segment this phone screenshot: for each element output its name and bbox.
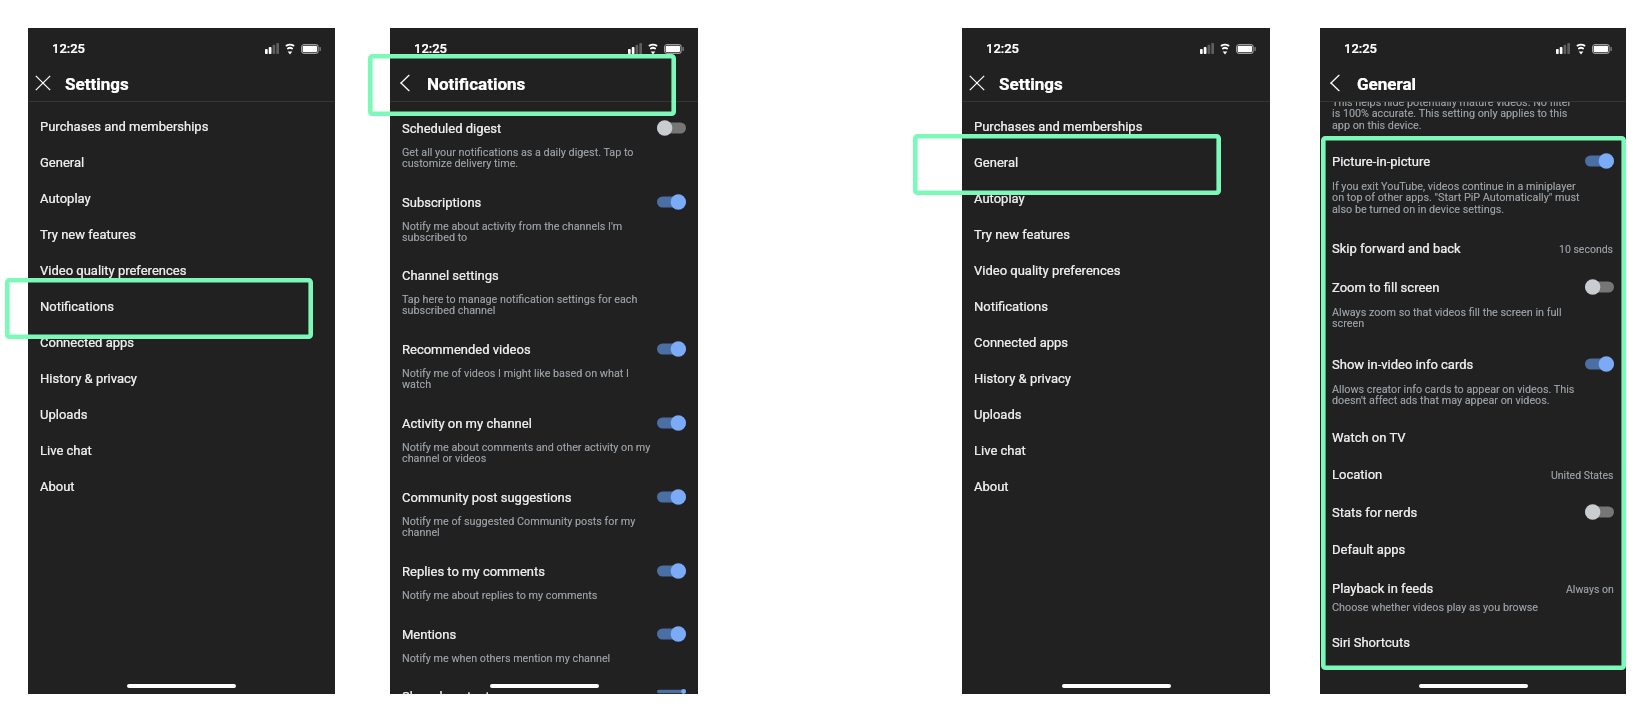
staticText: About	[974, 479, 1009, 494]
button[interactable]: Replies to my comments	[390, 551, 698, 614]
staticText: 10 seconds	[1559, 243, 1614, 255]
staticText: Autoplay	[974, 191, 1025, 206]
staticText: Default apps	[1332, 542, 1614, 557]
button[interactable]: Show in-video info cards	[1320, 344, 1626, 419]
button[interactable]: Notifications	[962, 288, 1270, 324]
button[interactable]: Uploads	[962, 396, 1270, 432]
staticText: 12:25	[52, 41, 85, 56]
staticText: Notify me when others mention my channel	[402, 652, 611, 665]
button[interactable]: Close	[28, 68, 58, 98]
staticText: Scheduled digest	[402, 121, 657, 136]
staticText: Notifications	[427, 74, 526, 94]
staticText: Replies to my comments	[402, 564, 657, 579]
staticText: General	[40, 155, 85, 170]
staticText: General	[1357, 74, 1417, 94]
button[interactable]: Scheduled digest	[390, 108, 698, 182]
button[interactable]: Switch on	[657, 194, 686, 210]
button[interactable]: Notifications	[28, 288, 335, 324]
button[interactable]: Siri Shortcuts	[1320, 624, 1626, 661]
staticText: Video quality preferences	[40, 263, 187, 278]
button[interactable]: Video quality preferences	[962, 252, 1270, 288]
button[interactable]: Switch on	[657, 489, 686, 505]
button[interactable]: General	[28, 144, 335, 180]
staticText: Try new features	[40, 227, 136, 242]
button[interactable]: Location	[1320, 456, 1626, 493]
button[interactable]: Community post suggestions	[390, 477, 698, 551]
staticText: Notify me about comments and other activ…	[402, 441, 651, 465]
button[interactable]: Switch on	[1585, 356, 1614, 372]
staticText: Live chat	[974, 443, 1026, 458]
button[interactable]: Switch on	[657, 341, 686, 357]
button[interactable]: Switch off	[1585, 279, 1614, 295]
staticText: Purchases and memberships	[40, 119, 209, 134]
button[interactable]: Mentions	[390, 614, 698, 677]
button[interactable]: Playback in feeds	[1320, 568, 1626, 624]
staticText: Siri Shortcuts	[1332, 635, 1614, 650]
staticText: Uploads	[40, 407, 88, 422]
staticText: Video quality preferences	[974, 263, 1121, 278]
staticText: If you exit YouTube, videos continue in …	[1332, 180, 1581, 216]
staticText: Connected apps	[40, 335, 135, 350]
button[interactable]: Zoom to fill screen	[1320, 267, 1626, 344]
button[interactable]: Shared content	[390, 677, 698, 694]
staticText: This helps hide potentially mature video…	[1332, 102, 1581, 131]
staticText: Watch on TV	[1332, 430, 1614, 445]
staticText: Mentions	[402, 627, 657, 642]
staticText: Connected apps	[974, 335, 1069, 350]
button[interactable]: Switch on	[657, 563, 686, 579]
button[interactable]: Switch on	[657, 415, 686, 431]
button[interactable]: Activity on my channel	[390, 403, 698, 477]
button[interactable]: Subscriptions	[390, 182, 698, 256]
button[interactable]: Try new features	[962, 216, 1270, 252]
staticText: General	[974, 155, 1019, 170]
button[interactable]: Autoplay	[962, 180, 1270, 216]
button[interactable]: Autoplay	[28, 180, 335, 216]
button[interactable]: Skip forward and back	[1320, 230, 1626, 267]
staticText: Live chat	[40, 443, 92, 458]
staticText: Uploads	[974, 407, 1022, 422]
staticText: Tap here to manage notification settings…	[402, 293, 651, 317]
staticText: Notifications	[974, 299, 1048, 314]
button[interactable]: General	[962, 144, 1270, 180]
button[interactable]: Watch on TV	[1320, 419, 1626, 456]
button[interactable]: Back	[1320, 68, 1350, 98]
button[interactable]: Switch on	[657, 626, 686, 642]
button[interactable]: Live chat	[28, 432, 335, 468]
staticText: Zoom to fill screen	[1332, 280, 1585, 295]
button[interactable]: Switch on	[657, 689, 686, 694]
button[interactable]: Switch off	[1585, 504, 1614, 520]
button[interactable]: Switch off	[657, 120, 686, 136]
staticText: Notify me of videos I might like based o…	[402, 367, 651, 391]
button[interactable]: Purchases and memberships	[28, 108, 335, 144]
staticText: History & privacy	[974, 371, 1071, 386]
button[interactable]: Close	[962, 68, 992, 98]
staticText: Allows creator info cards to appear on v…	[1332, 383, 1581, 407]
staticText: 12:25	[986, 41, 1019, 56]
button[interactable]: Switch on	[1585, 153, 1614, 169]
button[interactable]: Purchases and memberships	[962, 108, 1270, 144]
button[interactable]: Back	[390, 68, 420, 98]
staticText: Autoplay	[40, 191, 91, 206]
button[interactable]: Connected apps	[962, 324, 1270, 360]
staticText: Notify me about replies to my comments	[402, 589, 598, 602]
button[interactable]: About	[28, 468, 335, 504]
button[interactable]: Live chat	[962, 432, 1270, 468]
button[interactable]: Stats for nerds	[1320, 493, 1626, 531]
button[interactable]: Video quality preferences	[28, 252, 335, 288]
staticText: Activity on my channel	[402, 416, 657, 431]
staticText: Always on	[1566, 583, 1614, 595]
button[interactable]: Uploads	[28, 396, 335, 432]
staticText: Notify me of suggested Community posts f…	[402, 515, 651, 539]
button[interactable]: About	[962, 468, 1270, 504]
button[interactable]: History & privacy	[962, 360, 1270, 396]
button[interactable]: Channel settings	[390, 256, 698, 329]
staticText: Recommended videos	[402, 342, 657, 357]
staticText: 12:25	[1344, 41, 1377, 56]
button[interactable]: Picture-in-picture	[1320, 137, 1626, 230]
button[interactable]: Try new features	[28, 216, 335, 252]
button[interactable]: Default apps	[1320, 531, 1626, 568]
button[interactable]: Recommended videos	[390, 329, 698, 403]
button[interactable]: Connected apps	[28, 324, 335, 360]
staticText: Community post suggestions	[402, 490, 657, 505]
button[interactable]: History & privacy	[28, 360, 335, 396]
